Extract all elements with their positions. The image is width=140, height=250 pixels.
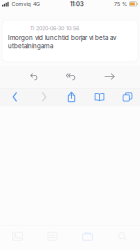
button[interactable]: Share xyxy=(58,88,84,106)
staticText: Ti 2020-06-30 10:56 xyxy=(30,25,79,31)
button[interactable]: Albums xyxy=(70,225,105,247)
staticText: 11:03 xyxy=(70,0,84,8)
staticText: 4G xyxy=(33,1,40,7)
button[interactable]: Forward xyxy=(31,88,57,106)
button[interactable]: Back xyxy=(2,88,28,106)
staticText: Comviq xyxy=(11,1,30,7)
button[interactable]: Bookmarks xyxy=(86,88,112,106)
staticText: Imorgon vid lunchtid börjar vi beta av xyxy=(8,34,116,41)
button[interactable]: Undo All xyxy=(58,66,84,88)
staticText: 75 % xyxy=(114,1,127,7)
staticText: utbetalningarna xyxy=(8,42,53,50)
button[interactable]: Tabs xyxy=(114,88,140,106)
button[interactable]: Redo xyxy=(97,66,123,88)
button[interactable]: Undo xyxy=(21,66,47,88)
